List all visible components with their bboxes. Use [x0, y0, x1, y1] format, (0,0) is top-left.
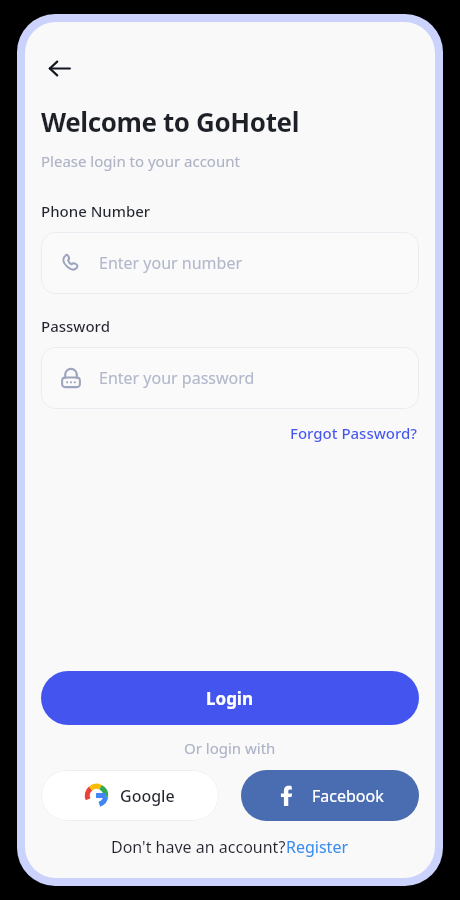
button[interactable]: Register [286, 836, 349, 858]
staticText: Don't have an account? [111, 836, 286, 858]
staticText: Welcome to GoHotel [41, 104, 300, 139]
button[interactable]: Login [41, 671, 419, 725]
staticText: Login [206, 687, 254, 710]
button[interactable]: Back [37, 46, 81, 90]
button[interactable]: Facebook [241, 770, 419, 821]
staticText: Enter your number [99, 252, 243, 274]
button[interactable]: Password field [41, 347, 419, 409]
staticText: Enter your password [99, 367, 255, 389]
staticText: Google [120, 785, 175, 807]
button[interactable]: Google [41, 770, 219, 821]
staticText: Or login with [184, 738, 276, 758]
staticText: Facebook [312, 785, 384, 807]
staticText: Password [41, 316, 110, 336]
button[interactable]: Forgot Password? [287, 420, 421, 446]
staticText: Register [286, 836, 349, 858]
staticText: Please login to your account [41, 151, 240, 171]
staticText: Forgot Password? [290, 423, 418, 443]
staticText: Phone Number [41, 201, 151, 221]
button[interactable]: Phone number field [41, 232, 419, 294]
